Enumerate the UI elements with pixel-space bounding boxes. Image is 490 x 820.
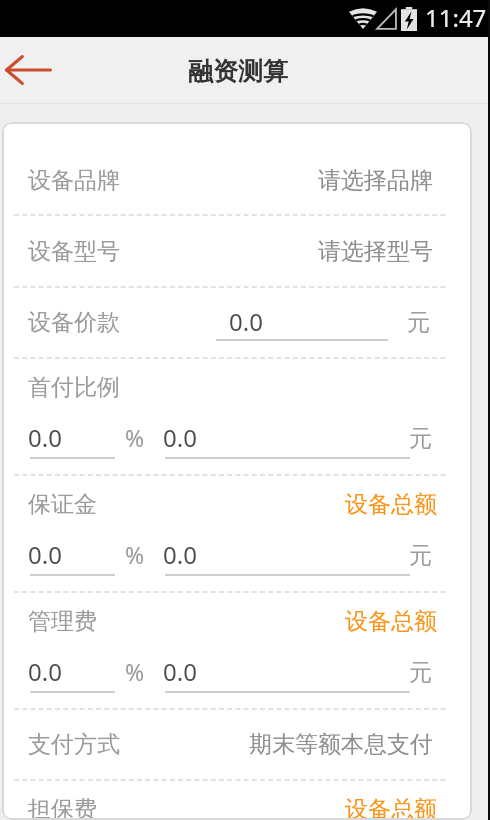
button[interactable]: 设备型号 (2, 214, 472, 285)
staticText: 设备品牌 (28, 166, 120, 195)
staticText: 期末等额本息支付 (249, 730, 433, 759)
button[interactable]: 0.0 (165, 655, 410, 693)
button[interactable]: 设备总额 (345, 795, 437, 820)
staticText: 融资测算 (188, 56, 288, 87)
button[interactable]: 0.0 (216, 305, 388, 341)
staticText: 设备价款 (28, 308, 120, 337)
button[interactable]: 0.0 (30, 538, 115, 576)
button[interactable]: 0.0 (165, 421, 410, 459)
staticText: % (125, 422, 145, 453)
staticText: 元 (409, 658, 432, 687)
staticText: 元 (409, 541, 432, 570)
button[interactable]: 0.0 (30, 655, 115, 693)
staticText: 0.0 (163, 421, 197, 454)
staticText: 0.0 (163, 655, 197, 688)
staticText: 请选择型号 (318, 237, 433, 266)
staticText: 请选择品牌 (318, 166, 433, 195)
staticText: 设备总额 (345, 795, 437, 820)
button[interactable]: 支付方式 (2, 707, 472, 778)
staticText: 担保费 (28, 795, 97, 820)
button[interactable]: 设备总额 (345, 490, 437, 519)
staticText: 设备总额 (345, 607, 437, 636)
staticText: 首付比例 (28, 373, 120, 402)
staticText: 0.0 (28, 421, 62, 454)
button[interactable]: 设备品牌 (2, 143, 472, 214)
staticText: 0.0 (229, 305, 263, 338)
staticText: 11:47 (425, 1, 487, 34)
staticText: 0.0 (28, 538, 62, 571)
staticText: % (125, 656, 145, 687)
button[interactable]: 设备总额 (345, 607, 437, 636)
staticText: 支付方式 (28, 730, 120, 759)
staticText: 保证金 (28, 490, 97, 519)
staticText: 元 (409, 424, 432, 453)
staticText: % (125, 539, 145, 570)
button[interactable]: 0.0 (165, 538, 410, 576)
staticText: 0.0 (163, 538, 197, 571)
staticText: 设备型号 (28, 237, 120, 266)
staticText: 管理费 (28, 607, 97, 636)
staticText: 设备总额 (345, 490, 437, 519)
button[interactable]: Back (0, 37, 62, 104)
staticText: 元 (407, 308, 430, 337)
staticText: 0.0 (28, 655, 62, 688)
button[interactable]: 0.0 (30, 421, 115, 459)
